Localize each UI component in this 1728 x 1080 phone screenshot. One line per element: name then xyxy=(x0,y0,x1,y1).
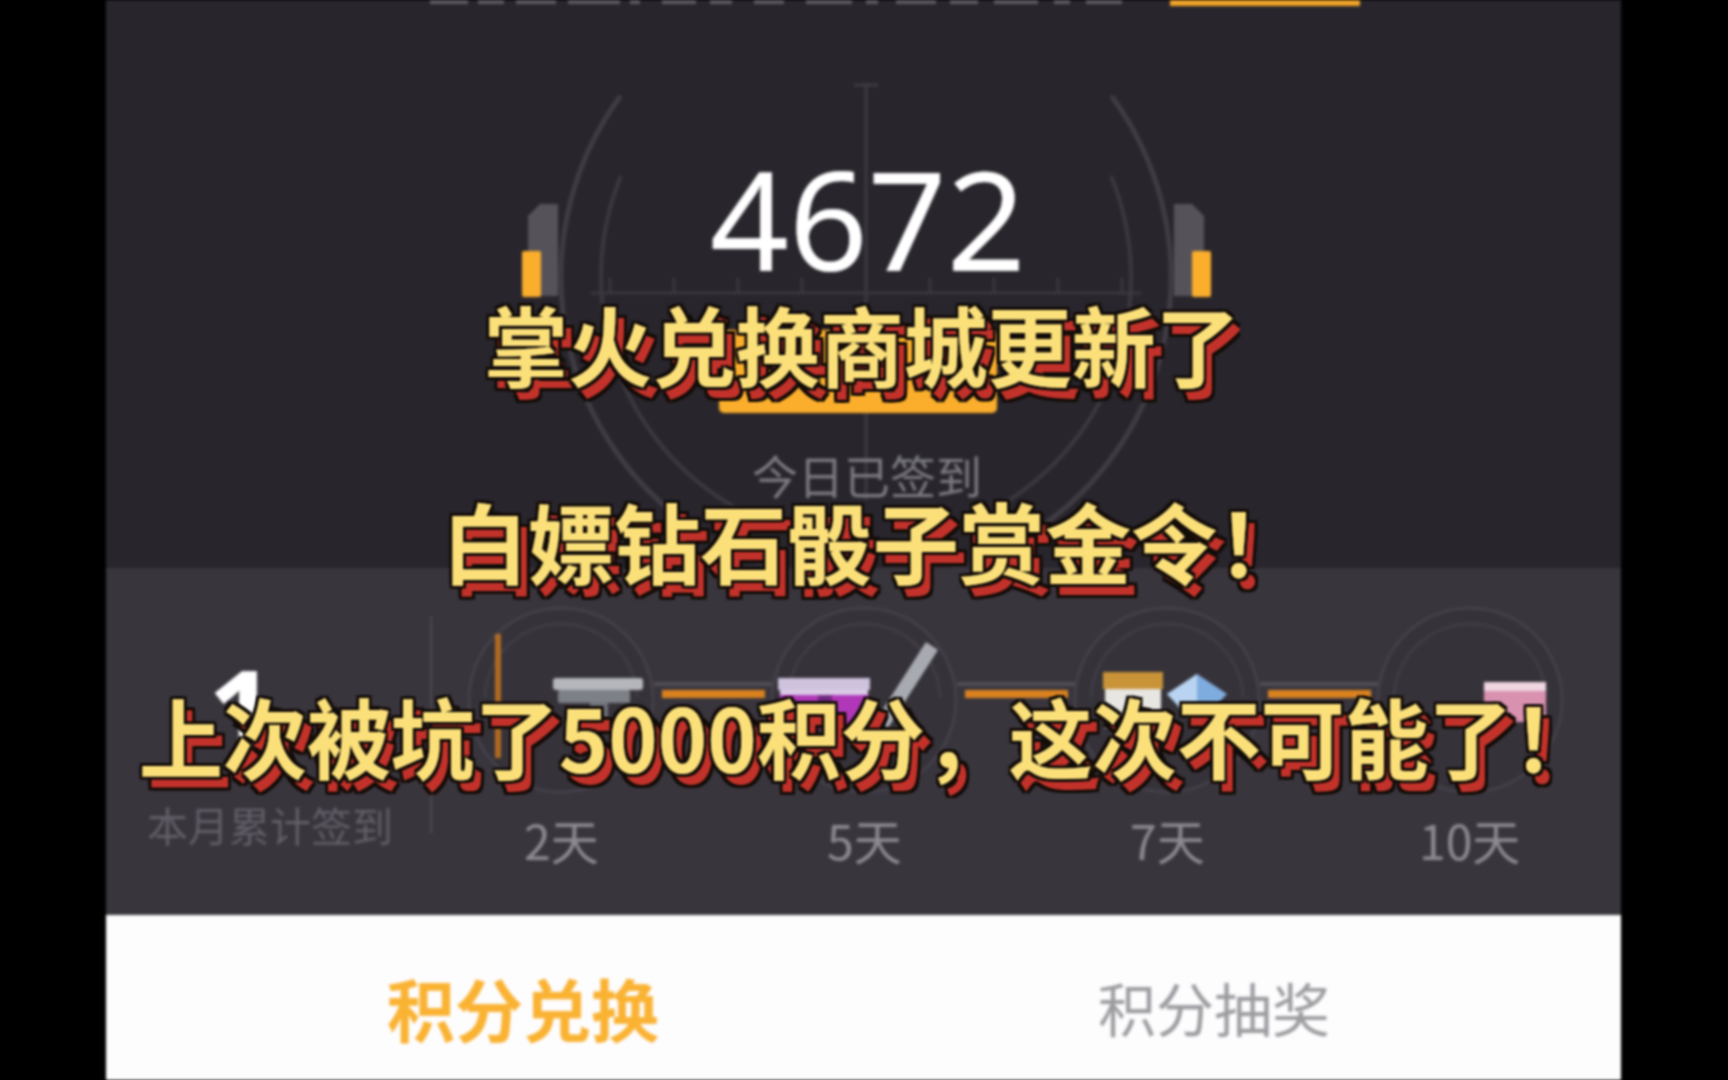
staticText: 掌火兑换商城更新了 xyxy=(481,277,1237,403)
staticText: 掌火兑换商城更新了 xyxy=(496,288,1251,414)
staticText: 白嫖钻石骰子赏金令！ xyxy=(439,474,1300,600)
staticText: 掌火兑换商城更新了 xyxy=(484,280,1240,406)
staticText: 本月累计签到 xyxy=(147,794,393,853)
staticText: 10天 xyxy=(1419,804,1521,874)
staticText: 上次被坑了5000积分，这次不可能了！ xyxy=(139,669,1597,795)
staticText: 白嫖钻石骰子赏金令！ xyxy=(445,474,1306,600)
staticText: 上次被坑了5000积分，这次不可能了！ xyxy=(139,672,1597,798)
staticText: 白嫖钻石骰子赏金令！ xyxy=(442,474,1303,600)
staticText: 掌火兑换商城更新了 xyxy=(487,280,1242,406)
staticText: 白嫖钻石骰子赏金令！ xyxy=(454,485,1315,611)
staticText: 掌火兑换商城更新了 xyxy=(487,283,1242,409)
staticText: 白嫖钻石骰子赏金令！ xyxy=(451,491,1312,617)
staticText: 上次被坑了5000积分，这次不可能了！ xyxy=(145,680,1603,806)
staticText: 白嫖钻石骰子赏金令！ xyxy=(448,485,1309,611)
staticText: 掌火兑换商城更新了 xyxy=(493,291,1248,417)
staticText: 上次被坑了5000积分，这次不可能了！ xyxy=(148,686,1606,812)
staticText: 上次被坑了5000积分，这次不可能了！ xyxy=(151,686,1609,812)
button[interactable]: 签到 xyxy=(719,330,997,413)
staticText: 掌火兑换商城更新了 xyxy=(490,291,1245,417)
staticText: 上次被坑了5000积分，这次不可能了！ xyxy=(148,680,1606,806)
staticText: 掌火兑换商城更新了 xyxy=(496,294,1251,420)
staticText: 上次被坑了5000积分，这次不可能了！ xyxy=(139,675,1597,801)
staticText: 白嫖钻石骰子赏金令！ xyxy=(454,491,1315,617)
staticText: 掌火兑换商城更新了 xyxy=(484,277,1240,403)
staticText: 4672 xyxy=(710,123,1026,311)
staticText: 上次被坑了5000积分，这次不可能了！ xyxy=(151,683,1609,809)
staticText: 白嫖钻石骰子赏金令！ xyxy=(442,480,1303,606)
button[interactable]: 5天 xyxy=(767,600,961,874)
staticText: 掌火兑换商城更新了 xyxy=(490,294,1245,420)
staticText: 白嫖钻石骰子赏金令！ xyxy=(451,488,1312,614)
staticText: 白嫖钻石骰子赏金令！ xyxy=(442,477,1303,603)
staticText: 白嫖钻石骰子赏金令！ xyxy=(448,491,1309,617)
staticText: 5天 xyxy=(827,804,902,874)
staticText: 上次被坑了5000积分，这次不可能了！ xyxy=(145,686,1603,812)
staticText: 上次被坑了5000积分，这次不可能了！ xyxy=(148,683,1606,809)
staticText: 掌火兑换商城更新了 xyxy=(487,277,1242,403)
staticText: 上次被坑了5000积分，这次不可能了！ xyxy=(136,669,1594,795)
staticText: 7天 xyxy=(1130,804,1205,874)
staticText: 白嫖钻石骰子赏金令！ xyxy=(451,485,1312,611)
staticText: 积分兑换 xyxy=(387,958,660,1056)
staticText: 白嫖钻石骰子赏金令！ xyxy=(445,477,1306,603)
button[interactable]: 今日已签到 xyxy=(719,434,1015,514)
staticText: 白嫖钻石骰子赏金令！ xyxy=(454,488,1315,614)
staticText: 白嫖钻石骰子赏金令！ xyxy=(439,480,1300,606)
staticText: 上次被坑了5000积分，这次不可能了！ xyxy=(145,683,1603,809)
staticText: 白嫖钻石骰子赏金令！ xyxy=(445,480,1306,606)
staticText: 掌火兑换商城更新了 xyxy=(490,288,1245,414)
staticText: 2天 xyxy=(524,804,599,874)
staticText: 上次被坑了5000积分，这次不可能了！ xyxy=(136,675,1594,801)
staticText: 上次被坑了5000积分，这次不可能了！ xyxy=(136,672,1594,798)
staticText: 上次被坑了5000积分，这次不可能了！ xyxy=(142,675,1600,801)
staticText: 掌火兑换商城更新了 xyxy=(481,280,1237,406)
button[interactable]: 10天 xyxy=(1373,600,1567,874)
staticText: 今日已签到 xyxy=(752,441,982,508)
button[interactable]: 7天 xyxy=(1070,600,1264,874)
staticText: 白嫖钻石骰子赏金令！ xyxy=(448,488,1309,614)
staticText: 积分抽奖 xyxy=(1098,965,1331,1049)
button[interactable]: 积分抽奖 xyxy=(1044,950,1384,1064)
staticText: 上次被坑了5000积分，这次不可能了！ xyxy=(142,669,1600,795)
staticText: 上次被坑了5000积分，这次不可能了！ xyxy=(151,680,1609,806)
staticText: 白嫖钻石骰子赏金令！ xyxy=(439,477,1300,603)
staticText: 1 xyxy=(208,630,276,791)
staticText: 掌火兑换商城更新了 xyxy=(496,291,1251,417)
staticText: 掌火兑换商城更新了 xyxy=(484,283,1240,409)
button[interactable]: 积分兑换 xyxy=(333,946,713,1068)
staticText: 掌火兑换商城更新了 xyxy=(493,294,1248,420)
staticText: 掌火兑换商城更新了 xyxy=(493,288,1248,414)
staticText: 上次被坑了5000积分，这次不可能了！ xyxy=(142,672,1600,798)
staticText: 掌火兑换商城更新了 xyxy=(481,283,1237,409)
button[interactable]: 2天 xyxy=(464,600,658,874)
